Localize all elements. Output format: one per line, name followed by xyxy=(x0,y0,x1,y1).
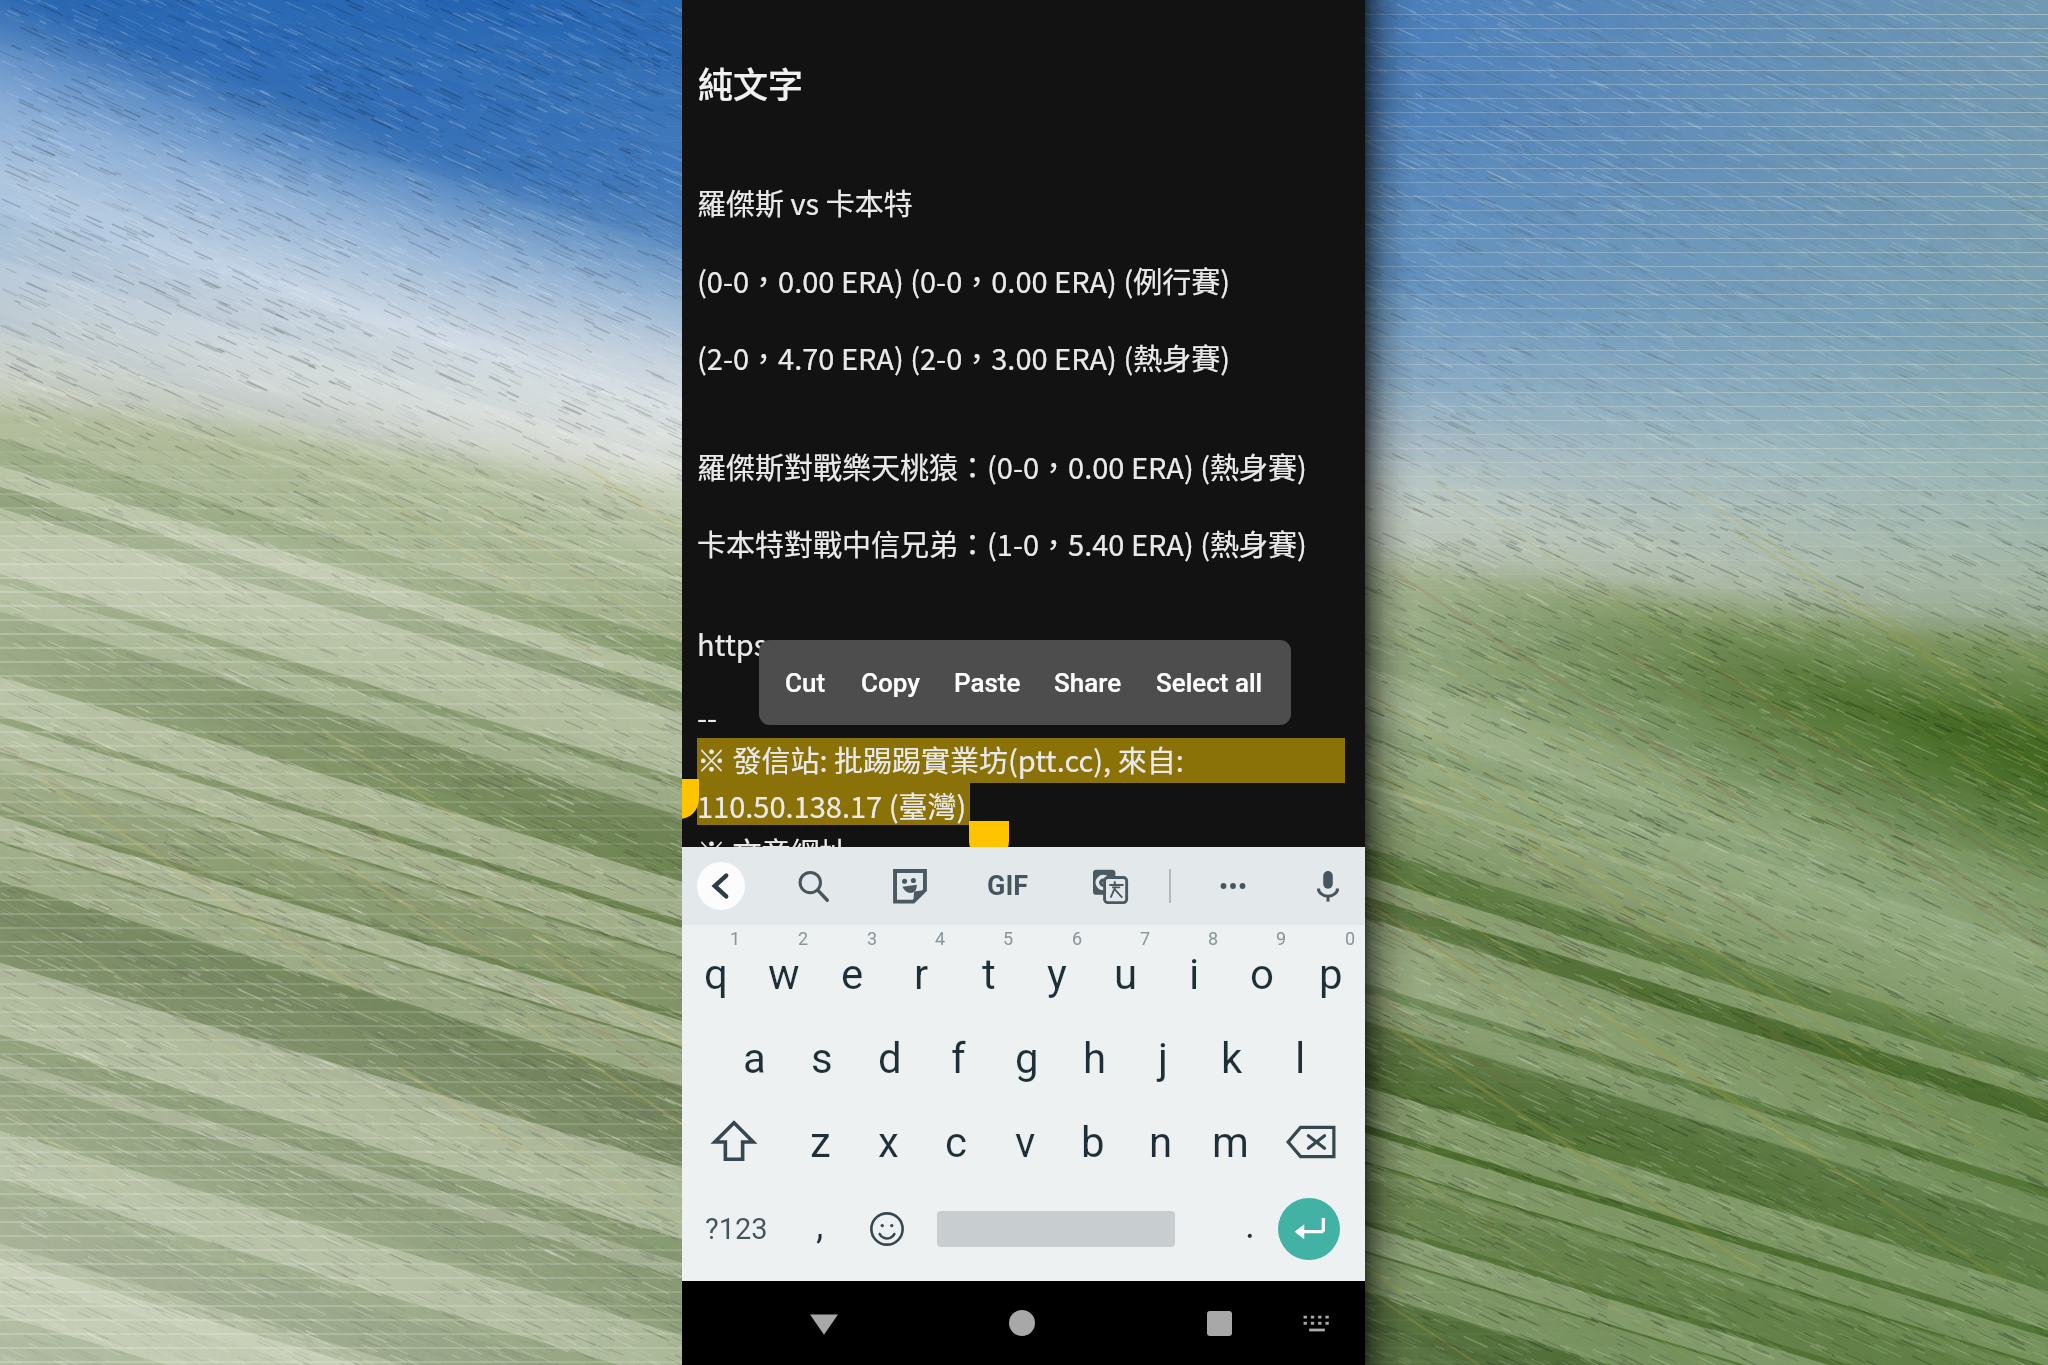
staticText: v xyxy=(1015,1118,1036,1167)
button[interactable]: Space xyxy=(920,1183,1220,1275)
button[interactable]: Share xyxy=(1040,646,1136,719)
staticText: t xyxy=(982,950,996,999)
button[interactable]: q xyxy=(682,928,750,1020)
staticText: b xyxy=(1081,1118,1105,1167)
button[interactable]: i xyxy=(1160,928,1228,1020)
staticText: GIF xyxy=(987,870,1029,902)
button[interactable]: Switch keyboard xyxy=(1275,1281,1359,1365)
staticText: https xyxy=(697,622,768,664)
button[interactable]: o xyxy=(1228,928,1296,1020)
staticText: u xyxy=(1114,950,1138,999)
staticText: r xyxy=(914,950,929,999)
button[interactable]: Cut xyxy=(760,646,850,719)
button[interactable]: c xyxy=(922,1096,990,1188)
button[interactable]: Period xyxy=(1220,1183,1280,1275)
staticText: s xyxy=(811,1034,833,1083)
button[interactable]: e xyxy=(818,928,886,1020)
button[interactable]: Article text xyxy=(682,0,1365,847)
staticText: . xyxy=(1245,1203,1256,1248)
button[interactable]: Comma xyxy=(786,1183,854,1275)
button[interactable]: r xyxy=(887,928,955,1020)
staticText: d xyxy=(878,1034,902,1083)
staticText: Cut xyxy=(785,668,826,698)
staticText: q xyxy=(704,950,728,999)
staticText: ※ 文章網址: xyxy=(697,830,857,872)
staticText: m xyxy=(1212,1118,1249,1167)
button[interactable]: l xyxy=(1266,1012,1334,1104)
staticText: n xyxy=(1149,1118,1173,1167)
button[interactable]: f xyxy=(924,1012,992,1104)
staticText: 3 xyxy=(867,928,878,949)
staticText: h xyxy=(1083,1034,1107,1083)
button[interactable]: Search xyxy=(779,856,847,916)
button[interactable]: x xyxy=(854,1096,922,1188)
button[interactable]: p xyxy=(1297,928,1365,1020)
staticText: 7 xyxy=(1140,928,1151,949)
staticText: -- xyxy=(697,695,718,737)
button[interactable]: y xyxy=(1023,928,1091,1020)
staticText: 2 xyxy=(798,928,809,949)
button[interactable]: Home xyxy=(976,1281,1068,1365)
button[interactable]: k xyxy=(1198,1012,1266,1104)
staticText: 0 xyxy=(1345,928,1356,949)
button[interactable]: Copy xyxy=(844,646,936,719)
staticText: f xyxy=(951,1034,966,1083)
button[interactable]: Voice input xyxy=(1294,856,1362,916)
button[interactable]: a xyxy=(720,1012,788,1104)
button[interactable]: Translate xyxy=(1076,856,1144,916)
button[interactable]: Select all xyxy=(1134,646,1284,719)
staticText: (0-0，0.00 ERA) (0-0，0.00 ERA) (例行賽) xyxy=(697,259,1231,301)
staticText: 純文字 xyxy=(698,57,804,108)
staticText: c xyxy=(945,1118,967,1167)
button[interactable]: Enter xyxy=(1267,1183,1350,1275)
button[interactable]: Backspace xyxy=(1256,1096,1365,1188)
staticText: j xyxy=(1158,1034,1169,1083)
staticText: 4 xyxy=(935,928,946,949)
button[interactable]: Recents xyxy=(1173,1281,1265,1365)
button[interactable]: Shift xyxy=(682,1096,786,1188)
button[interactable]: v xyxy=(991,1096,1059,1188)
staticText: 8 xyxy=(1208,928,1219,949)
button[interactable]: h xyxy=(1061,1012,1129,1104)
button[interactable]: j xyxy=(1129,1012,1197,1104)
staticText: 110.50.138.17 (臺灣) xyxy=(697,784,967,826)
staticText: , xyxy=(816,1203,824,1248)
staticText: o xyxy=(1250,950,1274,999)
staticText: Select all xyxy=(1156,668,1263,698)
staticText: 6 xyxy=(1072,928,1083,949)
button[interactable]: w xyxy=(750,928,818,1020)
staticText: l xyxy=(1295,1034,1306,1083)
staticText: a xyxy=(743,1034,766,1083)
button[interactable]: b xyxy=(1059,1096,1127,1188)
staticText: k xyxy=(1221,1034,1243,1083)
staticText: 卡本特對戰中信兄弟：(1-0，5.40 ERA) (熱身賽) xyxy=(697,522,1307,564)
staticText: p xyxy=(1319,950,1343,999)
staticText: 5 xyxy=(1003,928,1014,949)
button[interactable]: GIF xyxy=(968,858,1048,914)
button[interactable]: g xyxy=(993,1012,1061,1104)
staticText: 羅傑斯對戰樂天桃猿：(0-0，0.00 ERA) (熱身賽) xyxy=(697,445,1307,487)
staticText: e xyxy=(841,950,864,999)
staticText: g xyxy=(1015,1034,1039,1083)
button[interactable]: s xyxy=(788,1012,856,1104)
staticText: y xyxy=(1047,950,1067,999)
button[interactable]: u xyxy=(1092,928,1160,1020)
staticText: i xyxy=(1189,950,1200,999)
button[interactable]: m xyxy=(1196,1096,1264,1188)
button[interactable]: d xyxy=(856,1012,924,1104)
button[interactable]: z xyxy=(786,1096,854,1188)
staticText: ※ 發信站: 批踢踢實業坊(ptt.cc), 來自: xyxy=(697,738,1184,780)
button[interactable]: Paste xyxy=(939,646,1035,719)
staticText: 羅傑斯 vs 卡本特 xyxy=(697,181,913,223)
button[interactable]: Stickers xyxy=(876,856,944,916)
button[interactable]: Back xyxy=(778,1281,870,1365)
button[interactable]: More options xyxy=(1199,856,1267,916)
button[interactable]: ?123 xyxy=(690,1183,782,1275)
staticText: 1 xyxy=(730,928,741,949)
button[interactable]: n xyxy=(1127,1096,1195,1188)
staticText: 9 xyxy=(1276,928,1287,949)
button[interactable]: Back xyxy=(689,854,753,918)
button[interactable]: t xyxy=(955,928,1023,1020)
staticText: Copy xyxy=(861,668,920,698)
button[interactable]: Emoji xyxy=(854,1183,920,1275)
